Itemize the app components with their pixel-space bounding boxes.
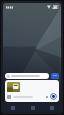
- button[interactable]: [5, 73, 49, 79]
- button[interactable]: Open: [51, 73, 59, 79]
- button[interactable]: More: [46, 96, 48, 98]
- button[interactable]: Preview image: [7, 82, 20, 92]
- button[interactable]: Source: [7, 95, 11, 99]
- button[interactable]: Preview image: [5, 80, 59, 102]
- button[interactable]: Play: [50, 93, 57, 100]
- button[interactable]: Home: [23, 103, 42, 112]
- button[interactable]: Back: [3, 103, 23, 112]
- button[interactable]: Recents: [42, 103, 61, 112]
